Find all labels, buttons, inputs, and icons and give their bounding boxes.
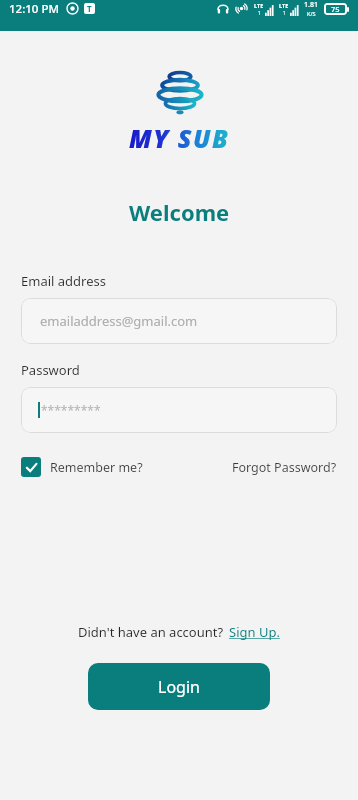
button[interactable]: *********: [21, 387, 337, 433]
button[interactable]: Remember me?: [21, 457, 143, 477]
staticText: Forgot Password?: [232, 459, 337, 476]
staticText: 12:10 PM: [9, 1, 60, 17]
staticText: Remember me?: [50, 459, 143, 476]
staticText: Welcome: [129, 197, 230, 227]
button[interactable]: Forgot Password?: [232, 459, 337, 476]
button[interactable]: Sign Up.: [229, 623, 280, 641]
button[interactable]: emailaddress@gmail.com: [21, 298, 337, 344]
staticText: Password: [21, 361, 80, 379]
staticText: Email address: [21, 272, 106, 290]
staticText: *********: [41, 402, 101, 418]
staticText: LTE: [279, 2, 289, 9]
button[interactable]: Login: [88, 663, 270, 710]
staticText: LTE: [254, 2, 264, 9]
staticText: 1: [258, 10, 261, 16]
staticText: Login: [158, 676, 200, 698]
staticText: 75: [331, 4, 340, 14]
staticText: 1: [283, 10, 286, 16]
staticText: 1.81: [304, 0, 318, 10]
staticText: K/S: [307, 10, 316, 17]
staticText: Didn't have an account?: [78, 623, 224, 641]
staticText: T: [87, 3, 92, 14]
staticText: MY SUB: [129, 121, 230, 155]
staticText: emailaddress@gmail.com: [40, 312, 198, 330]
staticText: Sign Up.: [229, 623, 280, 641]
